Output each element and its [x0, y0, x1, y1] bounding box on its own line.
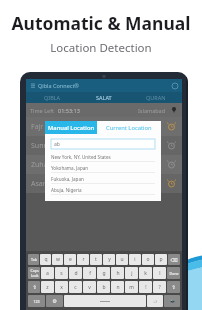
- button[interactable]: Change location: [170, 106, 178, 114]
- staticText: ?: [158, 284, 161, 291]
- button[interactable]: Alarm: [166, 121, 177, 132]
- staticText: Tab: [31, 257, 37, 262]
- staticText: Caps Lock: [30, 268, 39, 278]
- button[interactable]: c: [69, 281, 82, 293]
- button[interactable]: a: [41, 267, 54, 279]
- button[interactable]: Caps Lock: [28, 267, 40, 279]
- button[interactable]: l: [153, 267, 166, 279]
- button[interactable]: Asar: [26, 174, 182, 193]
- button[interactable]: e: [64, 254, 76, 265]
- button[interactable]: w: [52, 254, 63, 265]
- staticText: y: [108, 256, 111, 263]
- staticText: n: [116, 284, 120, 291]
- staticText: b: [102, 284, 106, 291]
- button[interactable]: j: [125, 267, 138, 279]
- button[interactable]: m: [125, 281, 138, 293]
- staticText: r: [82, 256, 85, 263]
- staticText: 04:55pm: [136, 180, 161, 188]
- staticText: m: [129, 284, 134, 291]
- button[interactable]: SALAT: [78, 92, 130, 103]
- staticText: z: [46, 284, 49, 291]
- staticText: Current Location: [106, 124, 152, 132]
- button[interactable]: n: [111, 281, 124, 293]
- button[interactable]: Done: [167, 267, 180, 279]
- button[interactable]: h: [111, 267, 124, 279]
- staticText: 📷: [170, 299, 175, 303]
- button[interactable]: Sunrise: [26, 136, 182, 155]
- staticText: Islamabad: [138, 107, 166, 114]
- button[interactable]: ab: [51, 139, 155, 149]
- button[interactable]: r: [77, 254, 89, 265]
- button[interactable]: ⌫: [168, 254, 180, 265]
- button[interactable]: ⇧: [28, 281, 40, 293]
- button[interactable]: g: [97, 267, 110, 279]
- staticText: Abuja, Nigeria: [51, 187, 82, 193]
- button[interactable]: b: [97, 281, 110, 293]
- button[interactable]: t: [90, 254, 102, 265]
- staticText: j: [131, 270, 133, 277]
- button[interactable]: New York, NY, United States: [51, 151, 155, 162]
- staticText: f: [89, 270, 91, 277]
- button[interactable]: More options: [171, 82, 178, 89]
- button[interactable]: Yokohama, Japan: [51, 162, 155, 173]
- staticText: 01:53:13: [58, 107, 80, 114]
- staticText: Manual Location: [48, 124, 95, 132]
- button[interactable]: 📷: [164, 295, 180, 307]
- button[interactable]: o: [142, 254, 154, 265]
- button[interactable]: i: [129, 254, 141, 265]
- button[interactable]: Alarm: [166, 159, 177, 170]
- button[interactable]: ?: [153, 281, 166, 293]
- staticText: k: [144, 270, 147, 277]
- button[interactable]: ⚙: [46, 295, 63, 307]
- button[interactable]: v: [83, 281, 96, 293]
- staticText: New York, NY, United States: [51, 154, 111, 160]
- button[interactable]: Fajr: [26, 117, 182, 136]
- staticText: c: [74, 284, 77, 291]
- staticText: e: [69, 256, 72, 263]
- button[interactable]: p: [155, 254, 167, 265]
- button[interactable]: Fukuoka, Japan: [51, 173, 155, 184]
- button[interactable]: Abuja, Nigeria: [51, 184, 155, 195]
- button[interactable]: Menu: [30, 83, 36, 89]
- button[interactable]: Manual Location: [45, 121, 97, 134]
- button[interactable]: s: [55, 267, 68, 279]
- button[interactable]: QURAN: [130, 92, 182, 103]
- button[interactable]: Alarm: [166, 178, 177, 189]
- button[interactable]: Zuhar: [26, 155, 182, 174]
- staticText: ⚙: [52, 298, 57, 304]
- staticText: t: [95, 256, 97, 263]
- staticText: Done: [169, 271, 179, 276]
- button[interactable]: Tab: [28, 254, 39, 265]
- staticText: v: [88, 284, 91, 291]
- button[interactable]: :-): [147, 295, 163, 307]
- button[interactable]: [64, 295, 146, 307]
- staticText: Qibla Connect®: [38, 82, 79, 89]
- staticText: i: [134, 256, 136, 263]
- button[interactable]: Current Location: [97, 121, 161, 134]
- button[interactable]: q: [40, 254, 51, 265]
- staticText: Fajr: [31, 122, 44, 132]
- staticText: 123: [33, 299, 40, 304]
- staticText: Location Detection: [50, 40, 152, 56]
- button[interactable]: y: [103, 254, 115, 265]
- button[interactable]: k: [139, 267, 152, 279]
- staticText: a: [46, 270, 49, 277]
- staticText: s: [60, 270, 63, 277]
- button[interactable]: Alarm: [166, 140, 177, 151]
- button[interactable]: QIBLA: [26, 92, 78, 103]
- button[interactable]: !: [139, 281, 152, 293]
- button[interactable]: z: [41, 281, 54, 293]
- staticText: d: [74, 270, 78, 277]
- staticText: g: [102, 270, 106, 277]
- button[interactable]: d: [69, 267, 82, 279]
- button[interactable]: x: [55, 281, 68, 293]
- button[interactable]: 123: [28, 295, 45, 307]
- button[interactable]: f: [83, 267, 96, 279]
- staticText: ⌫: [170, 257, 178, 263]
- staticText: q: [44, 256, 48, 263]
- staticText: 04:54pm: [103, 180, 128, 188]
- button[interactable]: u: [116, 254, 128, 265]
- button[interactable]: ⇧: [167, 281, 180, 293]
- staticText: ⇧: [32, 284, 37, 290]
- staticText: o: [146, 256, 150, 263]
